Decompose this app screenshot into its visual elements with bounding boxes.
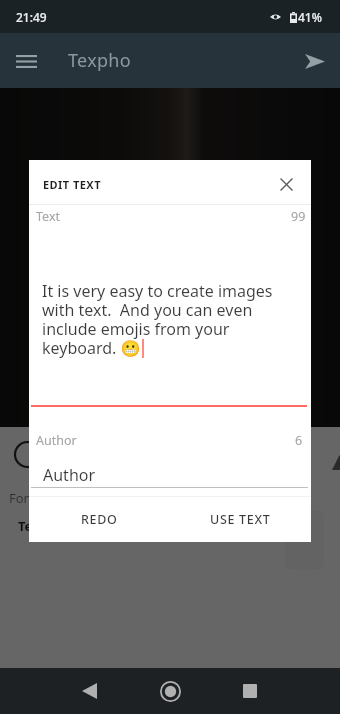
staticText: REDO xyxy=(81,511,118,528)
staticText: 6 xyxy=(295,432,303,449)
button[interactable]: Close xyxy=(274,172,298,196)
staticText: 21:49 xyxy=(16,9,47,25)
button[interactable]: Back xyxy=(69,671,109,711)
button[interactable]: Home xyxy=(150,671,190,711)
button[interactable]: Menu xyxy=(6,41,46,81)
button[interactable]: Send xyxy=(295,41,335,81)
staticText: EDIT TEXT xyxy=(43,177,101,192)
staticText: Fonts xyxy=(9,489,43,507)
staticText: Author xyxy=(43,464,96,486)
staticText: Text xyxy=(18,517,46,535)
staticText: It is very easy to create images with te… xyxy=(42,280,282,359)
staticText: 99 xyxy=(291,208,306,225)
staticText: USE TEXT xyxy=(210,511,271,528)
button[interactable]: USE TEXT xyxy=(170,497,311,542)
staticText: Texpho xyxy=(68,48,131,73)
staticText: Text xyxy=(36,208,61,225)
staticText: Author xyxy=(36,432,77,449)
staticText: 41% xyxy=(298,9,322,25)
button[interactable]: REDO xyxy=(29,497,170,542)
button[interactable]: Recents xyxy=(230,671,270,711)
